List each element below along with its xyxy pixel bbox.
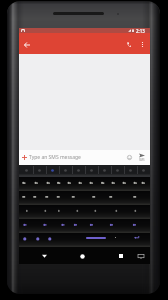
button[interactable]: Send SMS bbox=[135, 150, 149, 165]
button[interactable]: Emoji category 9 bbox=[124, 165, 137, 177]
button[interactable]: Emoji category 7 bbox=[98, 165, 111, 177]
button[interactable]: Back bbox=[37, 249, 51, 263]
button[interactable]: Add attachment bbox=[19, 150, 29, 165]
button[interactable]: Emoji row 4 bbox=[19, 219, 150, 233]
button[interactable]: Emoji category 2 bbox=[33, 165, 46, 177]
button[interactable]: Back bbox=[19, 33, 35, 54]
button[interactable]: Home bbox=[75, 249, 89, 263]
staticText: 2:13 bbox=[136, 28, 145, 33]
button[interactable]: Emoji row 2 bbox=[19, 191, 150, 205]
button[interactable]: Insert emoji bbox=[123, 150, 135, 165]
button[interactable]: More options bbox=[136, 33, 149, 54]
button[interactable]: Call bbox=[122, 33, 136, 54]
button[interactable]: Emoji category 1 bbox=[19, 165, 33, 177]
button[interactable]: Emoji category 10 bbox=[137, 165, 150, 177]
button[interactable]: Emoji category 8 bbox=[111, 165, 124, 177]
button[interactable]: Emoji category 6 bbox=[85, 165, 98, 177]
button[interactable]: Emoji row 1 bbox=[19, 177, 150, 191]
button[interactable]: Recent apps bbox=[114, 249, 128, 263]
button[interactable]: Emoji row 3 bbox=[19, 205, 150, 219]
button[interactable]: Emoji category 3 bbox=[46, 165, 59, 177]
button[interactable]: Emoji row 5 bbox=[19, 233, 150, 247]
button[interactable]: Enter bbox=[134, 236, 139, 239]
staticText: Type an SMS message bbox=[29, 154, 81, 161]
button[interactable]: Emoji category 4 bbox=[59, 165, 72, 177]
staticText: SMS bbox=[139, 158, 145, 162]
button[interactable]: Hide keyboard bbox=[134, 249, 148, 263]
button[interactable]: Emoji category 5 bbox=[72, 165, 85, 177]
button[interactable]: Space bbox=[86, 237, 106, 239]
